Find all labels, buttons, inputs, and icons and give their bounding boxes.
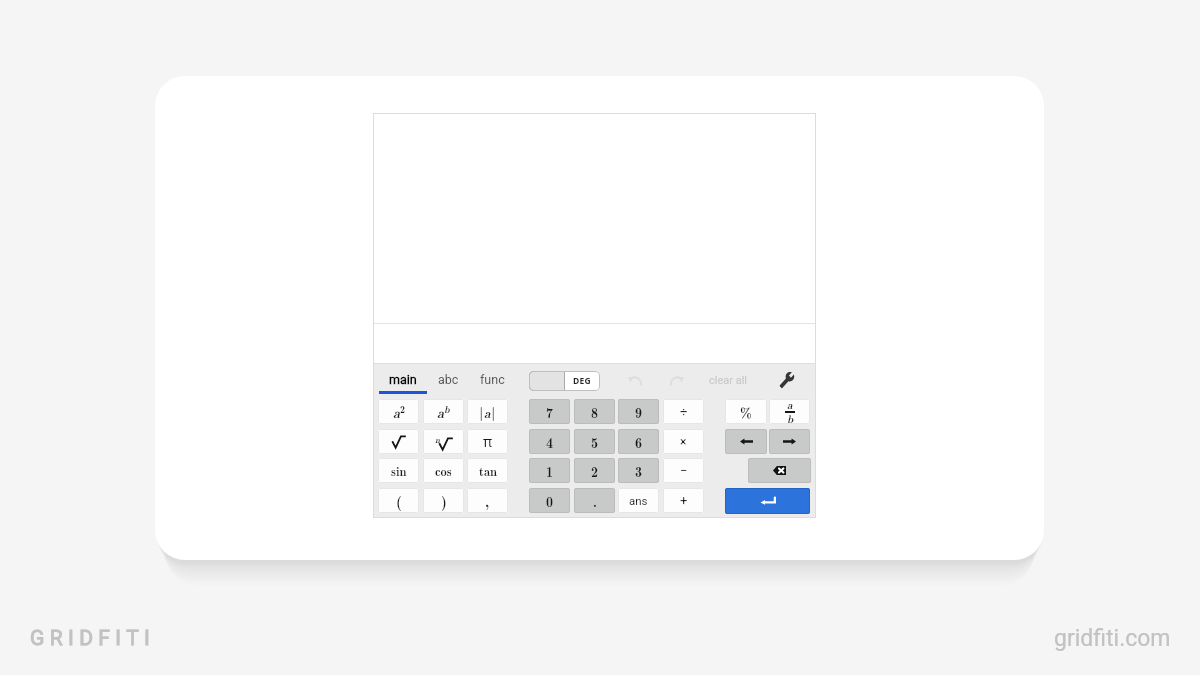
staticText: ans xyxy=(629,494,648,507)
button[interactable]: Undo xyxy=(623,370,646,389)
staticText: sin xyxy=(391,462,407,480)
staticText: 0 xyxy=(546,491,553,511)
button[interactable]: nth root xyxy=(423,429,464,454)
staticText: | xyxy=(479,402,484,422)
button[interactable]: , xyxy=(467,488,508,513)
button[interactable]: a to the power b xyxy=(423,399,464,424)
staticText: 8 xyxy=(591,402,598,422)
staticText: + xyxy=(680,493,688,508)
staticText: 9 xyxy=(635,402,642,422)
button[interactable]: % xyxy=(725,399,767,424)
button[interactable]: Angle unit DEG xyxy=(529,371,600,391)
staticText: GRIDFITI xyxy=(30,626,156,651)
staticText: 7 xyxy=(546,402,553,422)
staticText: main xyxy=(389,372,417,387)
staticText: 6 xyxy=(635,432,642,452)
button[interactable]: ( xyxy=(378,488,419,513)
button[interactable]: Redo xyxy=(665,370,688,389)
staticText: ) xyxy=(441,490,447,511)
button[interactable]: Move cursor left xyxy=(725,429,767,454)
button[interactable]: 9 xyxy=(618,399,659,424)
staticText: DEG xyxy=(573,375,592,387)
staticText: 4 xyxy=(546,432,553,452)
staticText: . xyxy=(593,491,597,511)
button[interactable]: absolute value of a xyxy=(467,399,508,424)
staticText: 3 xyxy=(635,461,642,481)
staticText: clear all xyxy=(709,374,748,387)
button[interactable]: 6 xyxy=(618,429,659,454)
button[interactable]: Enter xyxy=(725,488,810,514)
staticText: ( xyxy=(396,490,402,511)
button[interactable]: Settings xyxy=(779,371,795,389)
button[interactable]: 8 xyxy=(574,399,615,424)
button[interactable]: 2 xyxy=(574,458,615,483)
staticText: func xyxy=(480,372,505,387)
staticText: | xyxy=(491,402,496,422)
staticText: − xyxy=(680,463,688,478)
button[interactable]: ans xyxy=(618,488,659,513)
button[interactable]: Move cursor right xyxy=(769,429,810,454)
staticText: 5 xyxy=(591,432,598,452)
staticText: b xyxy=(787,411,794,424)
staticText: a xyxy=(787,399,793,413)
button[interactable]: main xyxy=(378,365,428,393)
button[interactable]: a squared xyxy=(378,399,419,424)
staticText: 2 xyxy=(591,461,598,481)
button[interactable]: Square root xyxy=(378,429,419,454)
staticText: a xyxy=(484,403,491,422)
button[interactable]: pi xyxy=(467,429,508,454)
staticText: 1 xyxy=(546,461,553,481)
button[interactable]: clear all xyxy=(701,370,756,390)
staticText: ÷ xyxy=(680,404,688,419)
staticText: × xyxy=(680,435,687,449)
staticText: tan xyxy=(479,462,497,480)
button[interactable]: ÷ xyxy=(663,399,704,424)
staticText: a xyxy=(437,402,444,422)
staticText: gridfiti.com xyxy=(1054,625,1171,652)
staticText: 2 xyxy=(400,402,405,416)
staticText: n xyxy=(435,433,440,445)
button[interactable]: sin xyxy=(378,458,419,483)
staticText: b xyxy=(444,402,450,416)
staticText: % xyxy=(740,402,752,422)
staticText: abc xyxy=(438,372,459,387)
button[interactable]: cos xyxy=(423,458,464,483)
staticText: a xyxy=(393,402,400,422)
button[interactable]: + xyxy=(663,488,704,513)
button[interactable]: 4 xyxy=(529,429,570,454)
button[interactable]: abc xyxy=(428,365,468,393)
button[interactable]: tan xyxy=(467,458,508,483)
button[interactable]: 5 xyxy=(574,429,615,454)
button[interactable]: Backspace xyxy=(748,458,811,483)
button[interactable]: ) xyxy=(423,488,464,513)
button[interactable]: func xyxy=(470,365,514,393)
button[interactable]: − xyxy=(663,458,704,483)
button[interactable]: . xyxy=(574,488,615,513)
staticText: , xyxy=(485,490,490,511)
button[interactable]: Fraction a over b xyxy=(769,399,810,424)
staticText: cos xyxy=(435,462,452,480)
button[interactable]: 0 xyxy=(529,488,570,513)
button[interactable]: × xyxy=(663,429,704,454)
button[interactable]: 3 xyxy=(618,458,659,483)
button[interactable]: 7 xyxy=(529,399,570,424)
staticText: π xyxy=(483,432,493,451)
button[interactable]: 1 xyxy=(529,458,570,483)
